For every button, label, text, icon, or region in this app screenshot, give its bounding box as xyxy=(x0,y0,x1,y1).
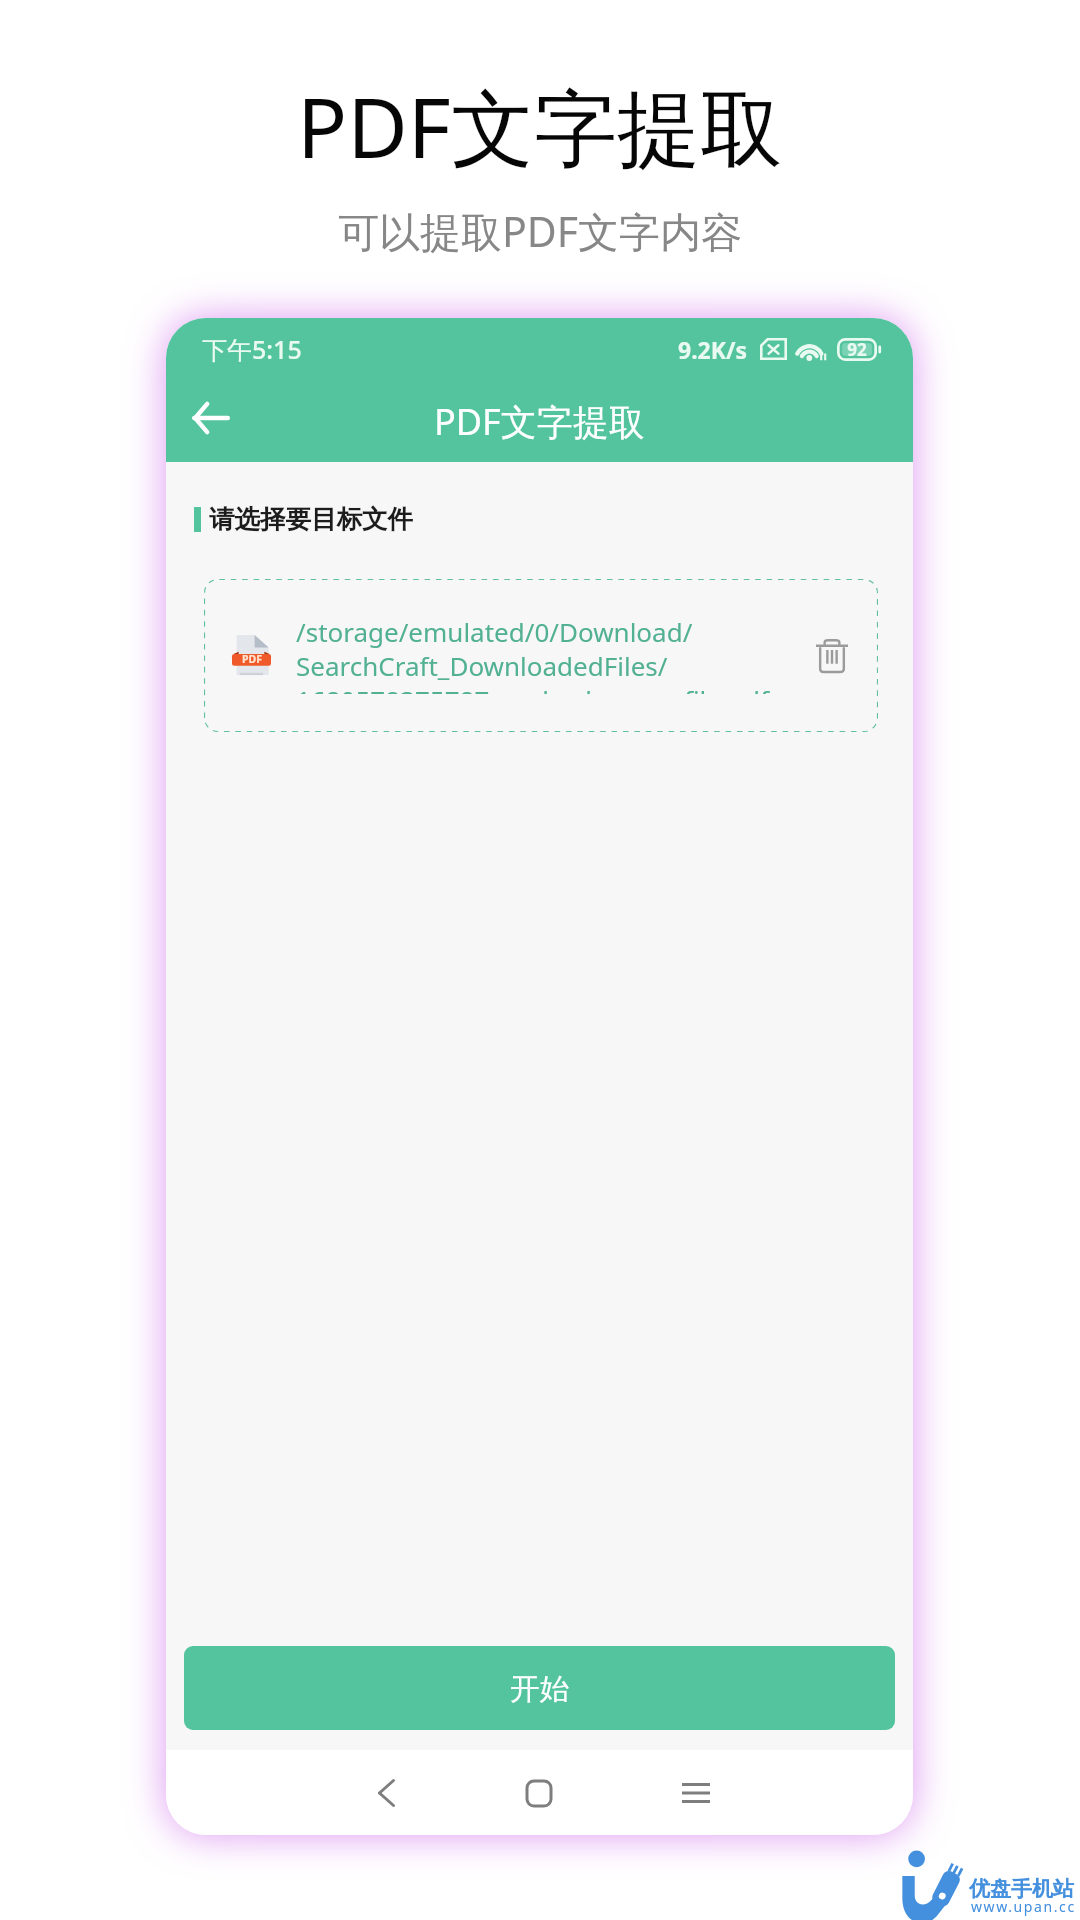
button[interactable]: Back xyxy=(356,1763,416,1823)
staticText: PDF文字提取 xyxy=(434,397,645,446)
staticText: /storage/emulated/0/Download/SearchCraft… xyxy=(296,614,792,694)
button[interactable]: Delete file xyxy=(806,630,858,682)
button[interactable]: Selected PDF file xyxy=(204,579,878,732)
button[interactable]: Recent apps xyxy=(666,1763,726,1823)
staticText: 92 xyxy=(837,338,877,361)
button[interactable]: 开始 xyxy=(184,1646,895,1730)
staticText: PDF xyxy=(242,652,262,666)
staticText: www.upan.cc xyxy=(971,1897,1076,1916)
staticText: 优盘手机站 xyxy=(969,1876,1074,1902)
button[interactable]: Back xyxy=(178,388,244,454)
staticText: 9.2K/s xyxy=(678,334,748,365)
staticText: 下午5:15 xyxy=(202,332,302,366)
staticText: 请选择要目标文件 xyxy=(209,503,413,535)
staticText: 可以提取PDF文字内容 xyxy=(338,203,743,259)
staticText: 开始 xyxy=(510,1671,569,1708)
button[interactable]: Home xyxy=(509,1763,569,1823)
staticText: PDF文字提取 xyxy=(297,69,783,182)
